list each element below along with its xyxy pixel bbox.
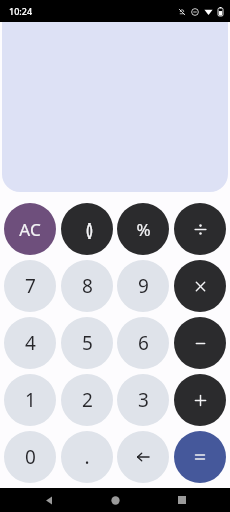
button[interactable]: 7 xyxy=(4,260,56,312)
staticText: . xyxy=(84,444,90,470)
button[interactable]: Backspace xyxy=(117,431,169,483)
staticText: 1 xyxy=(25,387,36,413)
staticText: AC xyxy=(19,218,41,241)
button[interactable]: 4 xyxy=(4,317,56,369)
staticText: 3 xyxy=(138,387,149,413)
button[interactable]: () xyxy=(61,203,113,255)
button[interactable]: Home xyxy=(97,488,133,512)
button[interactable]: 2 xyxy=(61,374,113,426)
staticText: 7 xyxy=(25,273,36,299)
button[interactable]: 6 xyxy=(117,317,169,369)
button[interactable] xyxy=(174,317,226,369)
button[interactable]: Recent apps xyxy=(164,488,200,512)
button[interactable]: 5 xyxy=(61,317,113,369)
staticText: 10:24 xyxy=(9,5,33,17)
staticText: % xyxy=(136,218,151,241)
staticText: 8 xyxy=(82,273,93,299)
button[interactable]: 0 xyxy=(4,431,56,483)
button[interactable]: AC xyxy=(4,203,56,255)
button[interactable]: 9 xyxy=(117,260,169,312)
staticText: 9 xyxy=(138,273,149,299)
staticText: 5 xyxy=(82,330,93,356)
staticText: 0 xyxy=(25,444,36,470)
button[interactable] xyxy=(174,374,226,426)
button[interactable]: 8 xyxy=(61,260,113,312)
button[interactable]: . xyxy=(61,431,113,483)
staticText: 4 xyxy=(25,330,36,356)
button[interactable] xyxy=(174,203,226,255)
button[interactable]: 3 xyxy=(117,374,169,426)
staticText: 6 xyxy=(138,330,149,356)
button[interactable] xyxy=(174,260,226,312)
button[interactable]: 1 xyxy=(4,374,56,426)
button[interactable] xyxy=(174,431,226,483)
staticText: () xyxy=(86,217,89,242)
button[interactable]: Back xyxy=(31,488,67,512)
button[interactable]: % xyxy=(117,203,169,255)
staticText: 2 xyxy=(82,387,93,413)
